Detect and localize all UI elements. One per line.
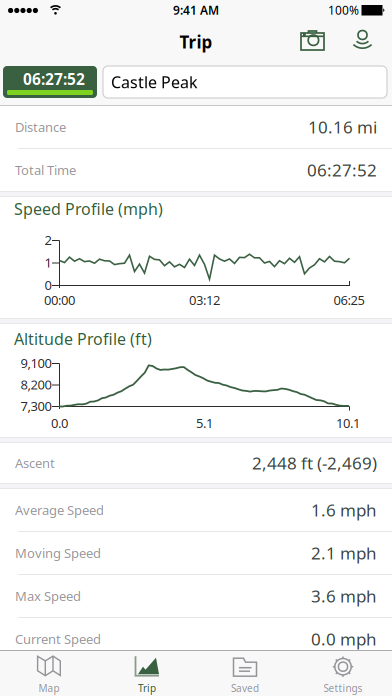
staticText: 9:41 AM	[173, 2, 219, 18]
staticText: Moving Speed	[15, 544, 101, 562]
staticText: Total Time	[15, 161, 76, 179]
staticText: 2	[44, 231, 51, 249]
staticText: 0.0 mph	[311, 627, 377, 651]
staticText: Ascent	[15, 454, 55, 472]
button[interactable]: Camera	[300, 30, 326, 54]
staticText: Map	[38, 681, 59, 695]
button[interactable]: Settings	[294, 650, 392, 696]
button[interactable]: Map	[0, 650, 98, 696]
staticText: 8,200	[20, 376, 51, 393]
staticText: 10.16 mi	[308, 115, 377, 139]
staticText: 1	[44, 254, 51, 271]
staticText: 0	[44, 276, 51, 294]
staticText: 0.0	[51, 414, 68, 432]
staticText: Max Speed	[15, 587, 81, 605]
staticText: Current Speed	[15, 630, 101, 648]
button[interactable]: Trip name	[103, 66, 387, 98]
staticText: 7,300	[20, 397, 51, 415]
staticText: Trip	[138, 681, 156, 695]
staticText: 100%	[328, 2, 359, 18]
staticText: Average Speed	[15, 501, 104, 519]
staticText: 1.6 mph	[311, 498, 377, 522]
staticText: 5.1	[196, 414, 213, 432]
staticText: Saved	[231, 681, 259, 695]
staticText: Castle Peak	[111, 71, 198, 93]
button[interactable]: Record Location	[352, 30, 376, 54]
staticText: Altitude Profile (ft)	[14, 328, 152, 350]
staticText: Trip	[179, 30, 212, 54]
staticText: Speed Profile (mph)	[14, 198, 163, 220]
button[interactable]: Trip	[98, 650, 196, 696]
staticText: 10.1	[336, 414, 360, 432]
staticText: Settings	[323, 681, 362, 695]
button[interactable]: Saved	[196, 650, 294, 696]
staticText: 2.1 mph	[311, 541, 377, 565]
staticText: 00:00	[44, 291, 75, 309]
staticText: 2,448 ft (-2,469)	[252, 451, 377, 475]
staticText: 03:12	[189, 291, 220, 309]
staticText: 06:25	[333, 291, 364, 309]
button[interactable]: Trip timer	[3, 66, 97, 98]
staticText: 06:27:52	[307, 158, 377, 182]
staticText: 3.6 mph	[311, 584, 377, 608]
staticText: Distance	[15, 118, 66, 136]
staticText: 9,100	[20, 354, 51, 372]
staticText: 06:27:52	[23, 68, 85, 89]
